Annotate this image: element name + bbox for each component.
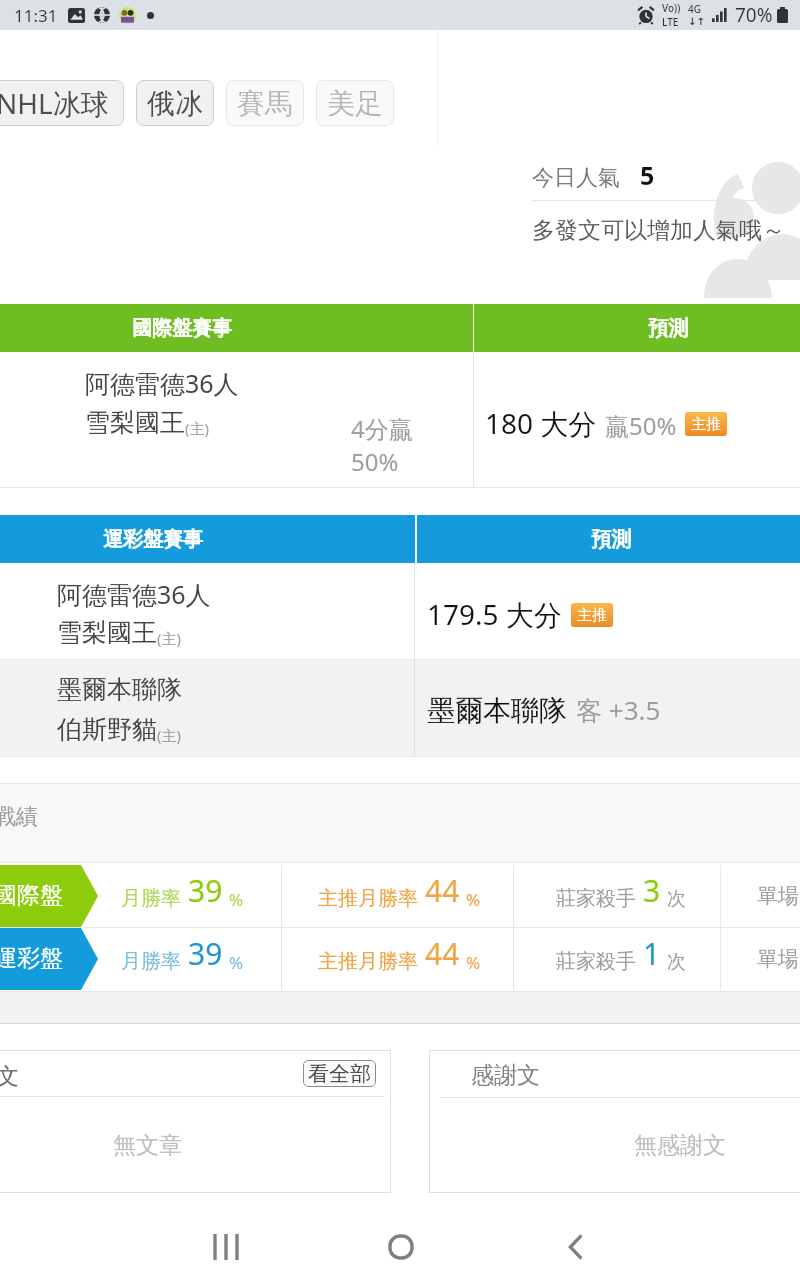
staticText: 179.5 大分	[427, 595, 562, 633]
staticText: 4G	[688, 2, 701, 16]
staticText: 莊家殺手	[556, 886, 636, 911]
staticText: 預測	[591, 527, 631, 552]
button[interactable]: 運彩盤賽事	[0, 515, 415, 563]
button[interactable]: 俄冰	[136, 80, 214, 126]
staticText: 44	[425, 933, 460, 974]
staticText: 多發文可以增加人氣哦～	[532, 216, 785, 245]
staticText: 墨爾本聯隊	[57, 674, 182, 705]
button[interactable]: Recent apps	[176, 1214, 276, 1280]
staticText: 70%	[735, 2, 773, 28]
button[interactable]: Back	[526, 1214, 626, 1280]
button[interactable]: 國際盤賽事	[0, 304, 473, 352]
staticText: 3	[643, 870, 661, 911]
staticText: 50%	[351, 445, 399, 478]
button[interactable]: 阿德雷德36人	[0, 563, 800, 659]
staticText: 單場	[757, 946, 799, 972]
staticText: 月勝率	[121, 949, 181, 974]
staticText: 感謝文	[471, 1061, 540, 1090]
staticText: 阿德雷德36人	[57, 577, 211, 611]
staticText: 運彩盤賽事	[103, 527, 203, 552]
button[interactable]: 阿德雷德36人	[0, 352, 800, 487]
staticText: 客 +3.5	[576, 692, 661, 728]
staticText: ↓↑	[688, 16, 705, 28]
staticText: %	[229, 888, 244, 911]
staticText: 月勝率	[121, 886, 181, 911]
button[interactable]: 賽馬	[226, 80, 304, 126]
button[interactable]: 預測	[417, 515, 800, 563]
staticText: 文	[0, 1062, 19, 1091]
staticText: 主推	[691, 415, 721, 434]
staticText: 主推	[577, 606, 607, 625]
staticText: 無感謝文	[634, 1131, 726, 1160]
staticText: LTE	[662, 15, 679, 29]
staticText: 雪梨國王	[57, 617, 157, 648]
staticText: 5	[640, 158, 655, 192]
button[interactable]: NHL冰球	[0, 80, 124, 126]
staticText: 美足	[327, 86, 383, 121]
staticText: %	[229, 951, 244, 974]
staticText: 1	[643, 933, 661, 974]
button[interactable]: Home	[351, 1214, 451, 1280]
staticText: (主)	[157, 628, 182, 648]
staticText: 看全部	[308, 1061, 371, 1087]
staticText: 11:31	[14, 4, 58, 27]
staticText: 運彩盤	[0, 944, 63, 973]
staticText: NHL冰球	[0, 84, 109, 122]
staticText: 次	[667, 950, 686, 974]
staticText: 伯斯野貓	[57, 714, 157, 745]
staticText: 無文章	[113, 1131, 182, 1160]
staticText: Vo))	[662, 1, 681, 15]
staticText: 44	[425, 870, 460, 911]
staticText: 贏50%	[605, 409, 677, 442]
staticText: 國際盤	[0, 881, 63, 910]
staticText: 今日人氣	[532, 164, 620, 192]
button[interactable]: 墨爾本聯隊	[0, 660, 800, 756]
staticText: (主)	[185, 418, 210, 438]
button[interactable]: 預測	[474, 304, 800, 352]
staticText: 39	[188, 870, 223, 911]
staticText: 戰績	[0, 803, 38, 831]
staticText: 莊家殺手	[556, 949, 636, 974]
staticText: 主推月勝率	[318, 886, 418, 911]
staticText: 4分贏	[351, 412, 413, 445]
staticText: 雪梨國王	[85, 407, 185, 438]
staticText: 賽馬	[237, 86, 293, 121]
staticText: 主推月勝率	[318, 949, 418, 974]
staticText: %	[466, 888, 481, 911]
staticText: %	[466, 951, 481, 974]
staticText: 預測	[648, 316, 688, 341]
staticText: (主)	[157, 725, 182, 745]
staticText: 單場	[757, 883, 799, 909]
staticText: 墨爾本聯隊	[427, 693, 567, 728]
staticText: 國際盤賽事	[132, 316, 232, 341]
staticText: 俄冰	[147, 86, 203, 121]
button[interactable]: 看全部	[303, 1060, 376, 1087]
staticText: 39	[188, 933, 223, 974]
staticText: 阿德雷德36人	[85, 366, 239, 400]
button[interactable]: 美足	[316, 80, 394, 126]
staticText: 180 大分	[485, 404, 597, 442]
staticText: 次	[667, 887, 686, 911]
